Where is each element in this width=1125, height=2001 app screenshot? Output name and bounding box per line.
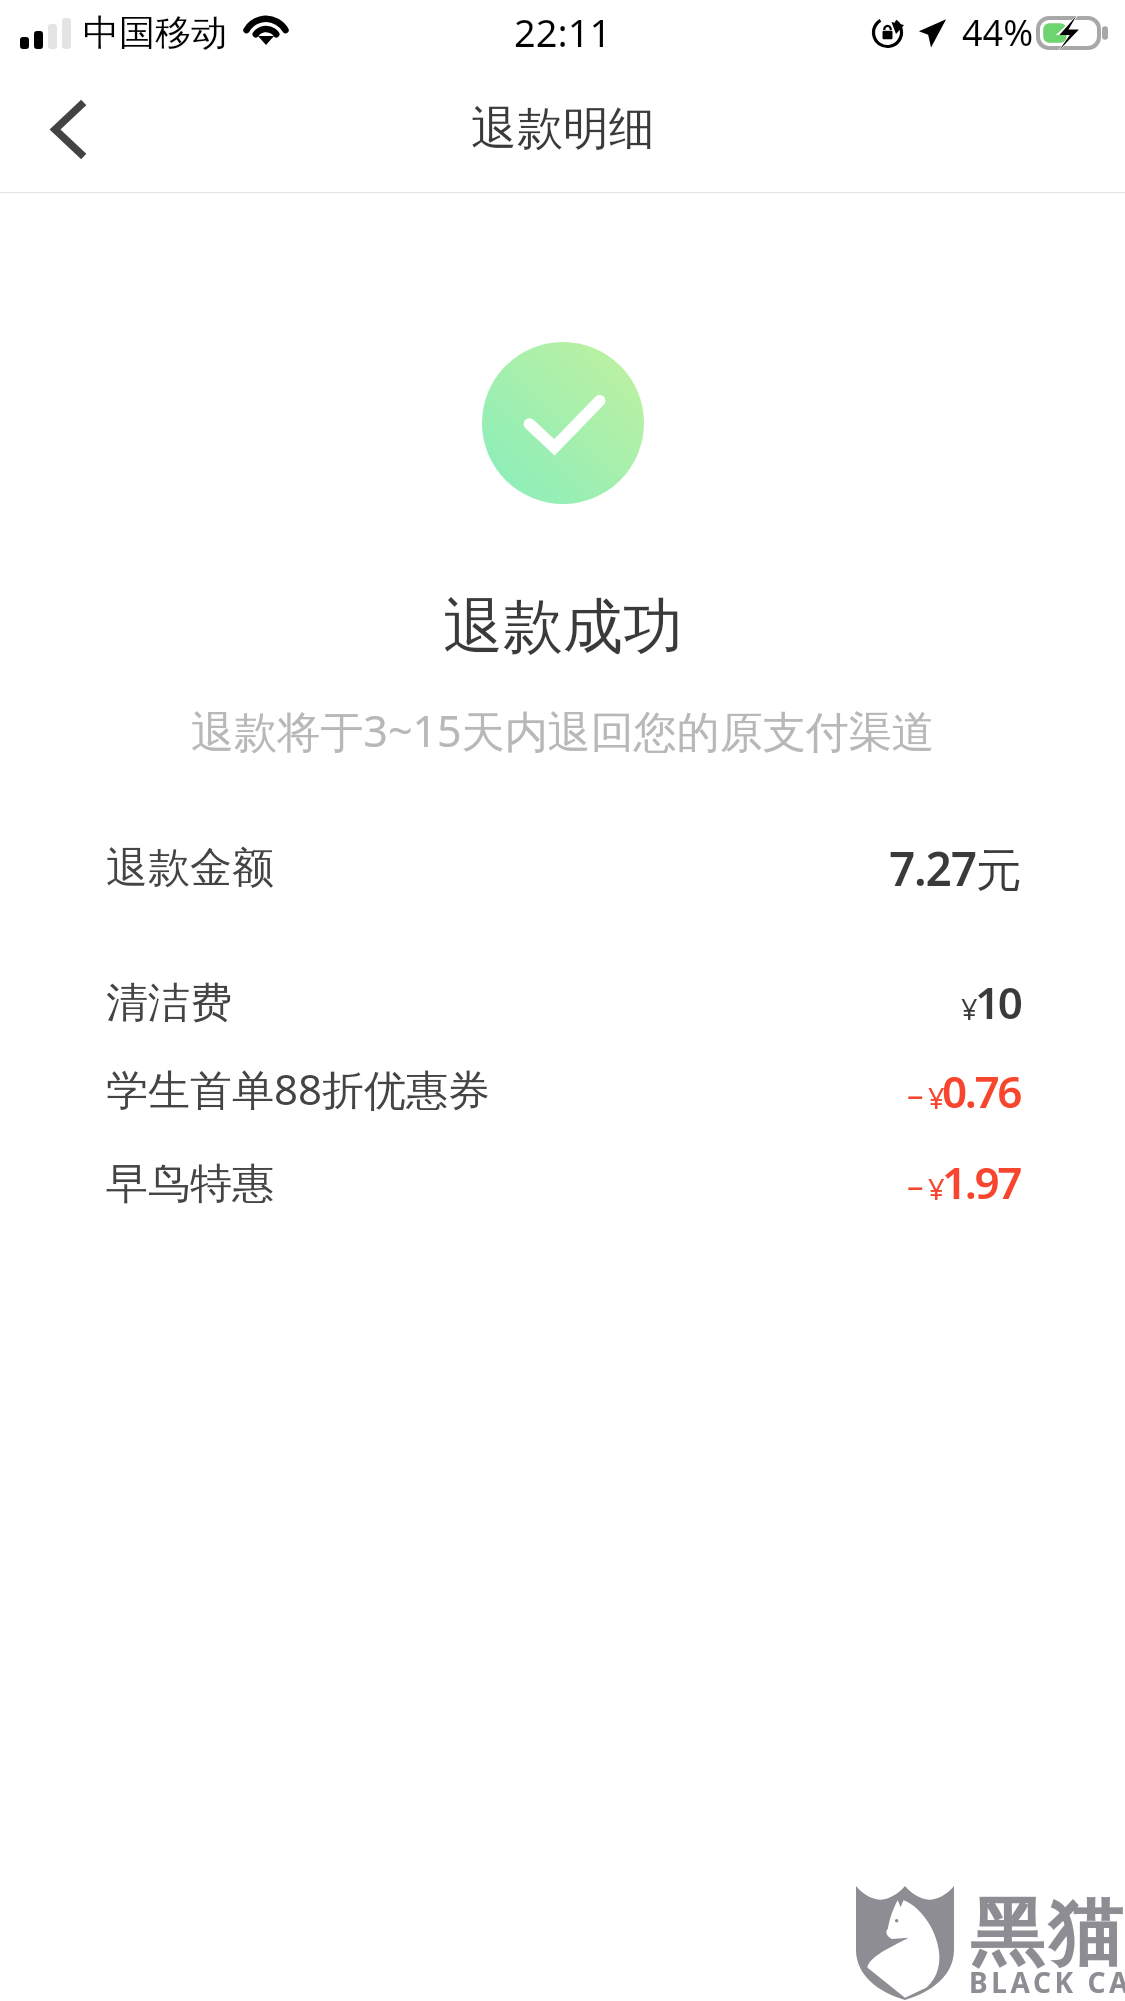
staticText: ¥	[928, 1078, 945, 1117]
staticText: ¥	[928, 1169, 945, 1208]
staticText: 早鸟特惠	[106, 1158, 274, 1211]
staticText: ¥	[961, 989, 978, 1028]
staticText: –	[907, 1072, 924, 1117]
staticText: 退款成功	[443, 589, 683, 665]
staticText: 退款金额	[106, 842, 274, 895]
staticText: BLACK CAT	[969, 1963, 1125, 2001]
staticText: 10	[975, 972, 1021, 1032]
staticText: 退款明细	[471, 100, 655, 158]
staticText: 清洁费	[106, 977, 232, 1030]
staticText: 中国移动	[83, 10, 227, 55]
staticText: 黑猫	[968, 1887, 1124, 1980]
staticText: 1.97	[942, 1152, 1021, 1212]
staticText: –	[907, 1163, 924, 1208]
staticText: 退款将于3~15天内退回您的原支付渠道	[191, 701, 935, 760]
staticText: 学生首单88折优惠券	[106, 1060, 491, 1117]
button[interactable]: Back	[13, 74, 123, 184]
staticText: 0.76	[942, 1061, 1021, 1121]
staticText: 22:11	[514, 6, 612, 58]
staticText: 7.27元	[889, 837, 1021, 900]
staticText: 44%	[962, 8, 1034, 57]
